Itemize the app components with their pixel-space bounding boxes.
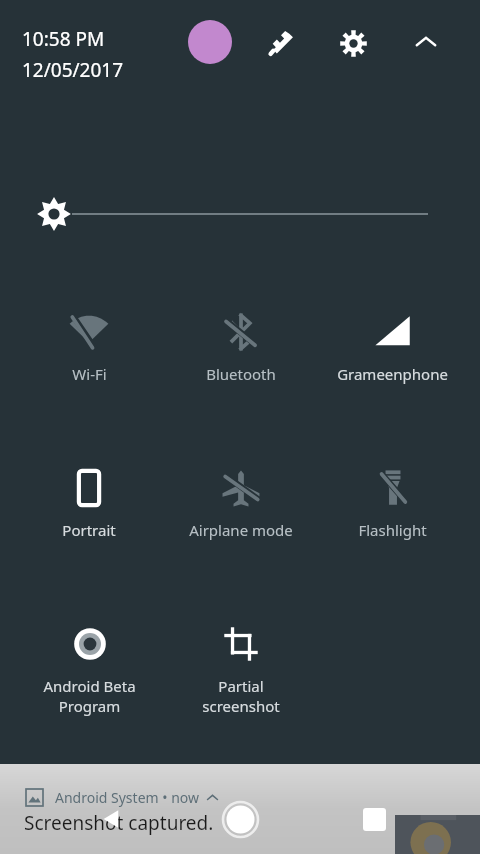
button[interactable]: Brightness <box>0 188 480 238</box>
staticText: Partial screenshot <box>202 676 280 716</box>
staticText: Android Beta Program <box>43 676 136 716</box>
staticText: Wi-Fi <box>72 364 107 384</box>
staticText: Screenshot captured. <box>24 810 214 836</box>
button[interactable]: Portrait <box>25 462 153 578</box>
staticText: Bluetooth <box>206 364 276 384</box>
button[interactable]: Partial screenshot <box>177 618 305 734</box>
staticText: Grameenphone <box>337 364 448 384</box>
button[interactable]: Grameenphone <box>328 306 456 422</box>
staticText: Airplane mode <box>189 520 293 540</box>
button[interactable]: Collapse <box>403 20 449 66</box>
button[interactable]: Flashlight <box>328 462 456 578</box>
button[interactable]: Android Beta Program <box>25 618 153 734</box>
button[interactable]: User avatar <box>188 20 232 64</box>
button[interactable]: Home <box>216 795 264 843</box>
button[interactable]: Airplane mode <box>177 462 305 578</box>
staticText: 10:58 PM <box>22 26 105 52</box>
button[interactable]: Settings <box>330 20 376 66</box>
staticText: Android System • now <box>55 788 200 807</box>
button[interactable]: Back <box>88 795 136 843</box>
staticText: Flashlight <box>358 520 427 540</box>
button[interactable]: Wi-Fi <box>25 306 153 422</box>
button[interactable]: Recent apps <box>350 795 398 843</box>
button[interactable]: Bluetooth <box>177 306 305 422</box>
staticText: Portrait <box>62 520 116 540</box>
button[interactable]: Android System • now <box>26 788 218 807</box>
button[interactable]: Tuner <box>258 20 304 66</box>
staticText: 12/05/2017 <box>22 57 124 83</box>
